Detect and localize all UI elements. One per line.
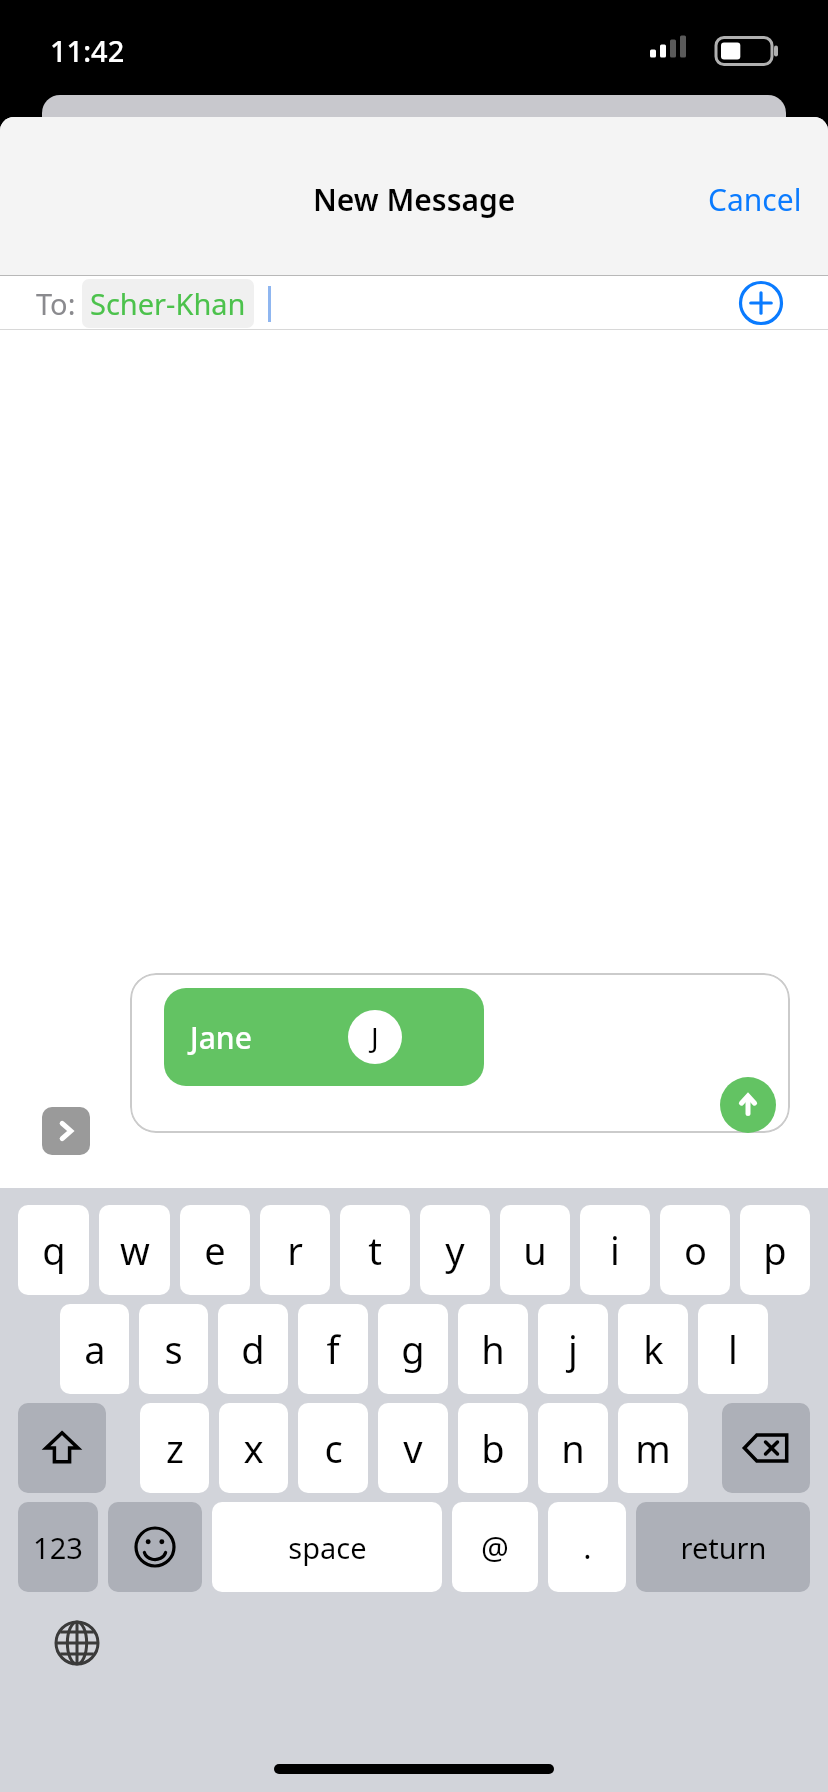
- staticText: 123: [33, 1528, 83, 1567]
- staticText: Scher-Khan: [90, 284, 246, 323]
- staticText: s: [164, 1323, 183, 1375]
- button[interactable]: Jane: [164, 988, 484, 1086]
- staticText: To:: [36, 284, 76, 323]
- button[interactable]: i: [580, 1205, 650, 1295]
- button[interactable]: 123: [18, 1502, 98, 1592]
- staticText: f: [326, 1323, 340, 1375]
- button[interactable]: space: [212, 1502, 442, 1592]
- button[interactable]: m: [618, 1403, 688, 1493]
- staticText: c: [324, 1422, 343, 1474]
- button[interactable]: c: [298, 1403, 368, 1493]
- staticText: n: [561, 1422, 585, 1474]
- staticText: z: [166, 1422, 184, 1474]
- staticText: r: [287, 1224, 303, 1276]
- button[interactable]: Scher-Khan: [82, 279, 254, 328]
- staticText: b: [481, 1422, 505, 1474]
- button[interactable]: p: [740, 1205, 810, 1295]
- staticText: k: [643, 1323, 664, 1375]
- button[interactable]: u: [500, 1205, 570, 1295]
- button[interactable]: v: [378, 1403, 448, 1493]
- staticText: New Message: [313, 179, 516, 220]
- button[interactable]: f: [298, 1304, 368, 1394]
- staticText: p: [763, 1224, 787, 1276]
- button[interactable]: Backspace: [722, 1403, 810, 1493]
- button[interactable]: n: [538, 1403, 608, 1493]
- button[interactable]: g: [378, 1304, 448, 1394]
- button[interactable]: Send: [720, 1077, 776, 1133]
- button[interactable]: e: [180, 1205, 250, 1295]
- button[interactable]: l: [698, 1304, 768, 1394]
- staticText: g: [401, 1323, 425, 1375]
- button[interactable]: Jane: [130, 973, 790, 1133]
- button[interactable]: s: [139, 1304, 208, 1394]
- button[interactable]: .: [548, 1502, 626, 1592]
- button[interactable]: t: [340, 1205, 410, 1295]
- staticText: Cancel: [708, 179, 802, 220]
- button[interactable]: d: [218, 1304, 288, 1394]
- staticText: h: [481, 1323, 505, 1375]
- staticText: m: [635, 1422, 671, 1474]
- staticText: w: [120, 1224, 150, 1276]
- button[interactable]: Expand apps: [42, 1107, 90, 1155]
- staticText: J: [371, 1018, 379, 1056]
- staticText: space: [288, 1528, 367, 1567]
- staticText: a: [84, 1323, 106, 1375]
- staticText: u: [523, 1224, 547, 1276]
- button[interactable]: Emoji: [108, 1502, 202, 1592]
- staticText: t: [368, 1224, 382, 1276]
- button[interactable]: Add contact: [734, 276, 788, 330]
- staticText: e: [204, 1224, 226, 1276]
- staticText: y: [445, 1224, 465, 1276]
- staticText: l: [728, 1323, 738, 1375]
- button[interactable]: q: [18, 1205, 89, 1295]
- staticText: 11:42: [50, 31, 125, 70]
- staticText: return: [680, 1528, 767, 1567]
- button[interactable]: w: [99, 1205, 170, 1295]
- staticText: v: [403, 1422, 423, 1474]
- button[interactable]: a: [60, 1304, 129, 1394]
- staticText: d: [241, 1323, 265, 1375]
- button[interactable]: y: [420, 1205, 490, 1295]
- button[interactable]: return: [636, 1502, 810, 1592]
- button[interactable]: r: [260, 1205, 330, 1295]
- button[interactable]: j: [538, 1304, 608, 1394]
- button[interactable]: h: [458, 1304, 528, 1394]
- button[interactable]: o: [660, 1205, 730, 1295]
- staticText: o: [684, 1224, 707, 1276]
- staticText: q: [42, 1224, 66, 1276]
- button[interactable]: @: [452, 1502, 538, 1592]
- staticText: x: [243, 1422, 264, 1474]
- button[interactable]: b: [458, 1403, 528, 1493]
- button[interactable]: Cancel: [682, 167, 828, 232]
- staticText: .: [583, 1526, 592, 1568]
- button[interactable]: k: [618, 1304, 688, 1394]
- staticText: j: [568, 1323, 578, 1375]
- button[interactable]: z: [140, 1403, 209, 1493]
- button[interactable]: Change keyboard: [48, 1614, 106, 1672]
- button[interactable]: Shift: [18, 1403, 106, 1493]
- button[interactable]: x: [219, 1403, 288, 1493]
- staticText: i: [610, 1224, 620, 1276]
- staticText: @: [481, 1526, 509, 1568]
- staticText: Jane: [190, 1017, 252, 1058]
